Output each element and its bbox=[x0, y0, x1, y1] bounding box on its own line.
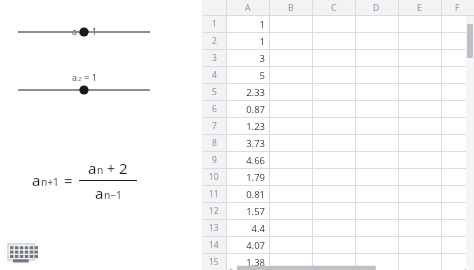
button[interactable] bbox=[269, 118, 312, 134]
button[interactable]: E bbox=[398, 0, 441, 15]
button[interactable] bbox=[269, 152, 312, 168]
button[interactable]: 0.81 bbox=[226, 186, 269, 202]
button[interactable]: 7 bbox=[202, 118, 226, 134]
button[interactable] bbox=[269, 220, 312, 236]
button[interactable] bbox=[355, 254, 398, 270]
button[interactable] bbox=[269, 254, 312, 270]
button[interactable] bbox=[355, 203, 398, 219]
button[interactable] bbox=[355, 33, 398, 49]
button[interactable]: a bbox=[18, 22, 150, 40]
button[interactable]: 6 bbox=[202, 101, 226, 117]
button[interactable] bbox=[355, 186, 398, 202]
button[interactable] bbox=[441, 152, 474, 168]
button[interactable] bbox=[312, 101, 355, 117]
button[interactable] bbox=[441, 237, 474, 253]
button[interactable] bbox=[312, 33, 355, 49]
button[interactable]: B bbox=[269, 0, 312, 15]
button[interactable] bbox=[312, 50, 355, 66]
button[interactable] bbox=[398, 67, 441, 83]
button[interactable] bbox=[441, 101, 474, 117]
button[interactable] bbox=[398, 169, 441, 185]
button[interactable] bbox=[269, 237, 312, 253]
button[interactable] bbox=[312, 84, 355, 100]
button[interactable] bbox=[355, 16, 398, 32]
button[interactable] bbox=[355, 220, 398, 236]
button[interactable] bbox=[355, 101, 398, 117]
button[interactable] bbox=[269, 186, 312, 202]
button[interactable] bbox=[312, 186, 355, 202]
button[interactable]: 13 bbox=[202, 220, 226, 236]
button[interactable]: 15 bbox=[202, 254, 226, 270]
button[interactable]: A bbox=[226, 0, 269, 15]
button[interactable] bbox=[441, 254, 474, 270]
button[interactable] bbox=[441, 203, 474, 219]
button[interactable] bbox=[312, 67, 355, 83]
button[interactable]: 5 bbox=[202, 84, 226, 100]
button[interactable] bbox=[398, 135, 441, 151]
button[interactable] bbox=[398, 203, 441, 219]
button[interactable] bbox=[269, 169, 312, 185]
button[interactable] bbox=[398, 118, 441, 134]
button[interactable]: 14 bbox=[202, 237, 226, 253]
button[interactable] bbox=[269, 33, 312, 49]
button[interactable]: 8 bbox=[202, 135, 226, 151]
button[interactable]: 12 bbox=[202, 203, 226, 219]
button[interactable] bbox=[441, 118, 474, 134]
button[interactable]: F bbox=[441, 0, 474, 15]
button[interactable]: Slider a2 bbox=[16, 82, 152, 98]
button[interactable] bbox=[312, 16, 355, 32]
button[interactable] bbox=[441, 50, 474, 66]
button[interactable] bbox=[355, 135, 398, 151]
button[interactable]: 1.57 bbox=[226, 203, 269, 219]
button[interactable] bbox=[398, 50, 441, 66]
button[interactable]: Slider a1 bbox=[16, 24, 152, 40]
button[interactable] bbox=[269, 101, 312, 117]
button[interactable] bbox=[312, 135, 355, 151]
button[interactable]: D bbox=[355, 0, 398, 15]
button[interactable] bbox=[355, 84, 398, 100]
button[interactable] bbox=[355, 67, 398, 83]
button[interactable] bbox=[398, 152, 441, 168]
button[interactable] bbox=[355, 50, 398, 66]
button[interactable]: a bbox=[18, 68, 150, 86]
button[interactable]: 1.79 bbox=[226, 169, 269, 185]
button[interactable] bbox=[269, 135, 312, 151]
button[interactable] bbox=[312, 118, 355, 134]
button[interactable]: 3 bbox=[226, 50, 269, 66]
button[interactable]: 4.66 bbox=[226, 152, 269, 168]
button[interactable]: 4.07 bbox=[226, 237, 269, 253]
button[interactable] bbox=[441, 169, 474, 185]
button[interactable]: 1 bbox=[202, 16, 226, 32]
button[interactable] bbox=[312, 220, 355, 236]
button[interactable] bbox=[312, 152, 355, 168]
button[interactable] bbox=[312, 254, 355, 270]
button[interactable]: 1.38 bbox=[226, 254, 269, 270]
button[interactable] bbox=[441, 135, 474, 151]
button[interactable]: 0.87 bbox=[226, 101, 269, 117]
button[interactable] bbox=[312, 237, 355, 253]
button[interactable] bbox=[269, 50, 312, 66]
button[interactable] bbox=[441, 220, 474, 236]
button[interactable] bbox=[398, 186, 441, 202]
button[interactable] bbox=[441, 16, 474, 32]
button[interactable] bbox=[355, 152, 398, 168]
button[interactable] bbox=[398, 101, 441, 117]
button[interactable] bbox=[312, 169, 355, 185]
button[interactable] bbox=[355, 237, 398, 253]
button[interactable] bbox=[269, 84, 312, 100]
button[interactable] bbox=[441, 33, 474, 49]
button[interactable]: C bbox=[312, 0, 355, 15]
button[interactable] bbox=[398, 33, 441, 49]
button[interactable] bbox=[269, 203, 312, 219]
button[interactable] bbox=[269, 67, 312, 83]
button[interactable]: 1.23 bbox=[226, 118, 269, 134]
button[interactable] bbox=[441, 186, 474, 202]
button[interactable] bbox=[355, 169, 398, 185]
button[interactable] bbox=[398, 220, 441, 236]
button[interactable] bbox=[398, 254, 441, 270]
button[interactable]: Show keyboard bbox=[4, 240, 38, 264]
button[interactable]: 4.4 bbox=[226, 220, 269, 236]
button[interactable]: 9 bbox=[202, 152, 226, 168]
button[interactable]: 4 bbox=[202, 67, 226, 83]
button[interactable]: 3 bbox=[202, 50, 226, 66]
